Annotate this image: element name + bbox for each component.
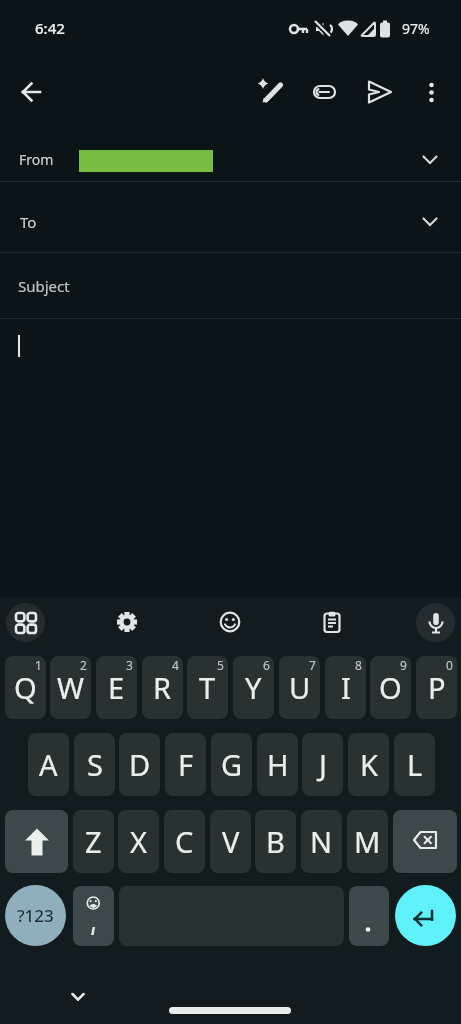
staticText: A [39, 745, 58, 784]
staticText: V [222, 822, 240, 861]
button[interactable] [395, 885, 456, 946]
staticText: J [319, 745, 327, 784]
staticText: 0 [446, 657, 453, 673]
button[interactable]: D [119, 733, 160, 796]
button[interactable] [416, 603, 455, 642]
button[interactable]: R [142, 656, 183, 719]
button[interactable]: To [0, 182, 461, 252]
button[interactable]: V [210, 810, 251, 873]
staticText: 4 [172, 657, 179, 673]
button[interactable] [5, 810, 68, 873]
button[interactable]: Z [73, 810, 114, 873]
staticText: H [267, 745, 289, 784]
staticText: M [354, 822, 381, 861]
staticText: N [310, 822, 333, 861]
staticText: 6 [263, 657, 270, 673]
button[interactable]: ?123 [5, 885, 66, 946]
staticText: L [407, 745, 423, 784]
button[interactable] [12, 72, 52, 112]
staticText: C [175, 822, 194, 861]
button[interactable]: Y [233, 656, 274, 719]
button[interactable]: Subject [0, 253, 461, 318]
staticText: 7 [309, 657, 316, 673]
staticText: 97% [402, 19, 430, 38]
button[interactable]: X [118, 810, 159, 873]
button[interactable] [349, 886, 389, 946]
staticText: To [20, 212, 37, 232]
button[interactable] [107, 602, 147, 642]
button[interactable]: W [50, 656, 91, 719]
staticText: P [428, 668, 446, 707]
button[interactable] [210, 602, 250, 642]
staticText: 1 [35, 657, 42, 673]
button[interactable]: H [257, 733, 298, 796]
staticText: B [266, 822, 285, 861]
staticText: U [289, 668, 311, 707]
button[interactable]: B [255, 810, 296, 873]
button[interactable]: T [187, 656, 228, 719]
button[interactable]: From [0, 131, 461, 181]
staticText: 5 [217, 657, 224, 673]
button[interactable] [312, 602, 352, 642]
staticText: I [341, 668, 351, 707]
staticText: K [360, 745, 378, 784]
staticText: R [153, 668, 172, 707]
staticText: Z [85, 822, 102, 861]
staticText: 2 [80, 657, 87, 673]
staticText: Y [245, 668, 262, 707]
staticText: S [87, 745, 103, 784]
staticText: O [379, 668, 402, 707]
staticText: Subject [18, 276, 70, 296]
button[interactable]: E [96, 656, 137, 719]
button[interactable]: M [347, 810, 388, 873]
staticText: 3 [126, 657, 133, 673]
button[interactable] [412, 72, 452, 112]
button[interactable]: U [279, 656, 320, 719]
staticText: G [221, 745, 243, 784]
button[interactable] [73, 886, 114, 946]
button[interactable] [358, 72, 398, 112]
button[interactable]: P [416, 656, 457, 719]
button[interactable]: G [211, 733, 252, 796]
staticText: 6:42 [35, 18, 65, 38]
button[interactable]: C [164, 810, 205, 873]
staticText: 8 [355, 657, 362, 673]
staticText: 9 [400, 657, 407, 673]
button[interactable]: L [394, 733, 435, 796]
button[interactable]: I [325, 656, 366, 719]
staticText: T [199, 668, 216, 707]
button[interactable]: Q [5, 656, 46, 719]
button[interactable]: A [28, 733, 69, 796]
button[interactable]: J [302, 733, 343, 796]
staticText: F [178, 745, 194, 784]
button[interactable]: F [165, 733, 206, 796]
staticText: E [108, 668, 125, 707]
button[interactable] [6, 603, 45, 642]
staticText: From [19, 150, 54, 169]
button[interactable] [393, 810, 457, 873]
button[interactable] [60, 975, 96, 1005]
button[interactable]: S [74, 733, 115, 796]
staticText: X [130, 822, 147, 861]
staticText: D [129, 745, 151, 784]
staticText: W [57, 668, 84, 707]
button[interactable] [304, 72, 344, 112]
button[interactable]: K [348, 733, 389, 796]
staticText: Q [14, 668, 37, 707]
button[interactable]: N [301, 810, 342, 873]
staticText: ?123 [17, 904, 54, 927]
button[interactable]: O [370, 656, 411, 719]
button[interactable] [251, 72, 291, 112]
